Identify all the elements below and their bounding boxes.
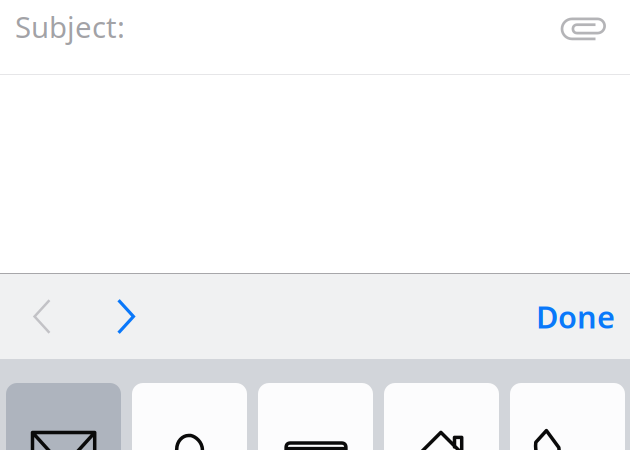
button[interactable]: Notes: [258, 383, 373, 450]
button[interactable]: Next field: [84, 274, 168, 359]
button[interactable]: Previous field: [0, 274, 84, 359]
button[interactable]: Home: [384, 383, 499, 450]
button[interactable]: Files: [510, 383, 625, 450]
staticText: Subject:: [15, 7, 125, 46]
button[interactable]: Done: [536, 274, 630, 359]
staticText: Done: [536, 296, 615, 337]
button[interactable]: Subject:: [15, 0, 550, 53]
button[interactable]: Messages: [132, 383, 247, 450]
button[interactable]: Mail: [6, 383, 121, 450]
button[interactable]: Add attachment: [550, 0, 620, 54]
